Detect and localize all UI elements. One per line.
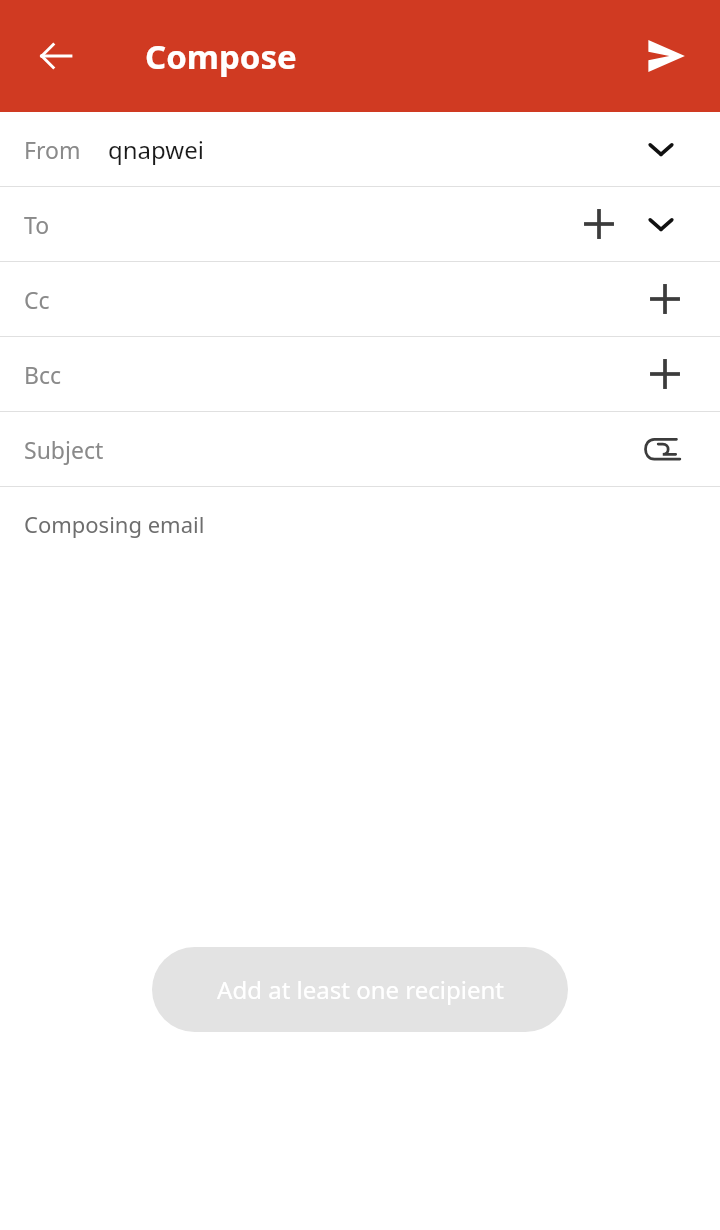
button[interactable]: Send [632,22,700,90]
button[interactable]: Cc [0,262,720,336]
button[interactable]: Bcc [0,337,720,411]
button[interactable]: Subject [0,412,720,486]
button[interactable]: Attach file [634,421,690,477]
button[interactable]: Add at least one recipient [152,947,568,1032]
button[interactable]: Add Bcc recipient [637,346,693,402]
staticText: Subject [24,434,104,465]
staticText: Bcc [24,359,62,390]
staticText: Compose [145,34,297,79]
staticText: Add at least one recipient [217,973,504,1006]
staticText: Composing email [24,509,205,539]
staticText: To [24,209,50,240]
button[interactable]: Add Cc recipient [637,271,693,327]
button[interactable]: Add To recipient [571,196,627,252]
staticText: From [24,134,81,165]
button[interactable]: Expand To [633,196,689,252]
button[interactable]: From [0,112,720,186]
button[interactable]: Back [22,22,90,90]
button[interactable]: To [0,187,720,261]
button[interactable]: Expand From [633,121,689,177]
staticText: qnapwei [108,133,204,166]
button[interactable]: Composing email [0,487,720,561]
staticText: Cc [24,284,50,315]
